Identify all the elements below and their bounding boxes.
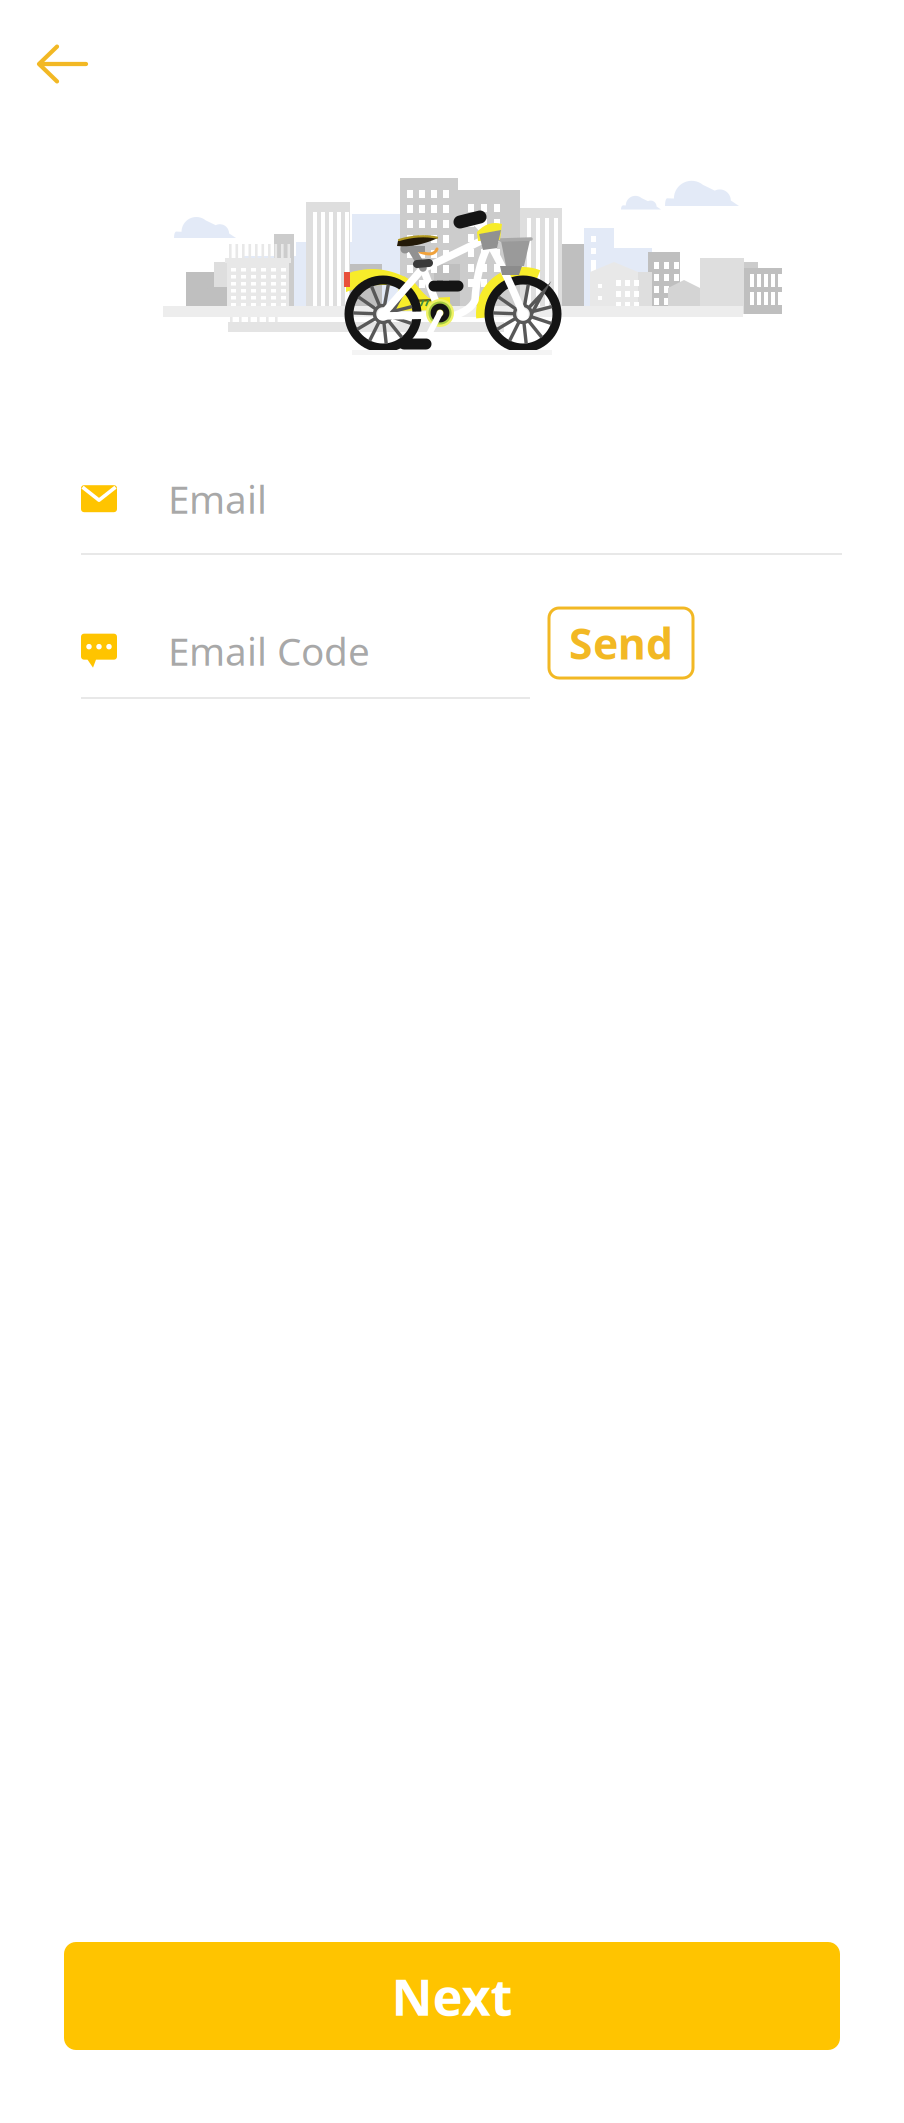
button[interactable]: Back: [0, 0, 110, 101]
staticText: Next: [391, 1962, 512, 2030]
staticText: Email Code: [168, 625, 370, 676]
staticText: Send: [569, 615, 673, 671]
button[interactable]: Next: [64, 1942, 840, 2050]
button[interactable]: Send: [549, 625, 693, 695]
staticText: Email: [168, 473, 267, 524]
